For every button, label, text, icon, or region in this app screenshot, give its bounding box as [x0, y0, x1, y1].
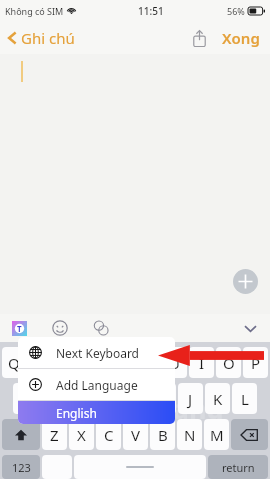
staticText: H: [158, 389, 170, 409]
staticText: O: [223, 353, 235, 373]
button[interactable]: Shift: [2, 419, 40, 450]
button[interactable]: E: [54, 347, 79, 378]
button[interactable]: J: [178, 383, 203, 414]
button[interactable]: Z: [42, 419, 67, 450]
staticText: W: [33, 353, 47, 373]
button[interactable]: [74, 455, 206, 479]
staticText: U: [169, 353, 180, 373]
button[interactable]: D: [69, 383, 95, 414]
staticText: A: [21, 389, 31, 409]
staticText: E: [62, 353, 71, 373]
button[interactable]: H: [151, 383, 176, 414]
staticText: 123: [12, 460, 31, 475]
staticText: Không có SIM: [5, 5, 64, 17]
button[interactable]: L: [232, 383, 257, 414]
button[interactable]: N: [177, 419, 202, 450]
button[interactable]: O: [216, 347, 241, 378]
button[interactable]: K: [205, 383, 230, 414]
staticText: English: [56, 405, 97, 421]
staticText: Next Keyboard: [56, 345, 139, 361]
staticText: Q: [8, 353, 20, 373]
button[interactable]: Return: [208, 455, 268, 479]
button[interactable]: English: [18, 401, 175, 424]
staticText: Ghi chú: [21, 28, 75, 48]
button[interactable]: M: [204, 419, 229, 450]
button[interactable]: S: [41, 383, 67, 414]
staticText: D: [77, 389, 88, 409]
staticText: N: [184, 425, 196, 445]
staticText: M: [210, 425, 224, 445]
staticText: K: [213, 389, 223, 409]
staticText: X: [77, 425, 86, 445]
button[interactable]: Next Keyboard: [18, 337, 175, 368]
staticText: T: [17, 323, 22, 334]
button[interactable]: Y: [135, 347, 160, 378]
button[interactable]: A: [13, 383, 39, 414]
staticText: Xong: [222, 28, 260, 48]
staticText: R: [89, 353, 99, 373]
staticText: S: [50, 389, 59, 409]
button[interactable]: T: [108, 347, 133, 378]
staticText: F: [106, 389, 114, 409]
button[interactable]: Xong: [220, 24, 262, 52]
staticText: Add Language: [56, 377, 138, 393]
button[interactable]: Share: [188, 25, 210, 51]
button[interactable]: Hide keyboard: [240, 318, 260, 338]
staticText: T: [116, 353, 125, 373]
staticText: J: [188, 389, 193, 409]
staticText: 11:51: [138, 4, 164, 18]
button[interactable]: B: [150, 419, 175, 450]
button[interactable]: F: [97, 383, 122, 414]
button[interactable]: U: [162, 347, 187, 378]
button[interactable]: X: [69, 419, 94, 450]
staticText: V: [131, 425, 141, 445]
button[interactable]: Translate: [92, 319, 110, 337]
button[interactable]: Text format: [10, 319, 28, 337]
button[interactable]: I: [189, 347, 214, 378]
button[interactable]: C: [96, 419, 121, 450]
button[interactable]: Add Language: [18, 369, 175, 400]
button[interactable]: Emoji: [51, 319, 69, 337]
button[interactable]: Numbers: [2, 455, 40, 479]
button[interactable]: Next keyboard: [42, 455, 72, 479]
staticText: quantrimang: [46, 390, 224, 427]
button[interactable]: Add attachment: [233, 269, 258, 294]
staticText: I: [199, 353, 205, 373]
staticText: 56%: [227, 5, 245, 17]
button[interactable]: G: [124, 383, 149, 414]
button[interactable]: P: [243, 347, 268, 378]
staticText: Y: [143, 353, 152, 373]
staticText: P: [251, 353, 261, 373]
staticText: return: [222, 460, 255, 475]
button[interactable]: R: [81, 347, 106, 378]
button[interactable]: Q: [2, 347, 26, 378]
staticText: G: [131, 389, 142, 409]
staticText: C: [104, 425, 114, 445]
button[interactable]: Delete: [231, 419, 268, 450]
staticText: Z: [50, 425, 59, 445]
staticText: L: [241, 389, 249, 409]
button[interactable]: W: [28, 347, 52, 378]
button[interactable]: Ghi chú: [6, 24, 77, 52]
button[interactable]: V: [123, 419, 148, 450]
staticText: B: [158, 425, 168, 445]
